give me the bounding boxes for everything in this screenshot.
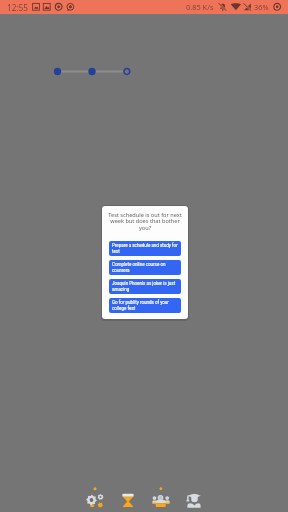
button[interactable]: Go for publity rounds of your college fe… xyxy=(109,298,181,313)
button[interactable]: Profile xyxy=(181,488,207,512)
button[interactable]: Timer xyxy=(115,488,141,512)
button[interactable]: Groups xyxy=(148,488,174,512)
button[interactable]: Settings xyxy=(79,488,105,512)
staticText: Prepare a schedule and study for test xyxy=(112,243,178,254)
button[interactable]: Prepare a schedule and study for test xyxy=(109,241,181,256)
staticText: 0.85 K/s xyxy=(186,2,214,12)
staticText: Go for publity rounds of your college fe… xyxy=(112,300,178,311)
staticText: Test schedule is out for next week but d… xyxy=(105,211,185,232)
button[interactable]: Joaquin Phoenix as joker is just amazing xyxy=(109,279,181,294)
staticText: Joaquin Phoenix as joker is just amazing xyxy=(112,281,178,292)
staticText: 36% xyxy=(254,2,269,12)
staticText: 12:55 xyxy=(7,2,28,13)
button[interactable]: Complete online course on coursera xyxy=(109,260,181,275)
staticText: Complete online course on coursera xyxy=(112,262,178,273)
